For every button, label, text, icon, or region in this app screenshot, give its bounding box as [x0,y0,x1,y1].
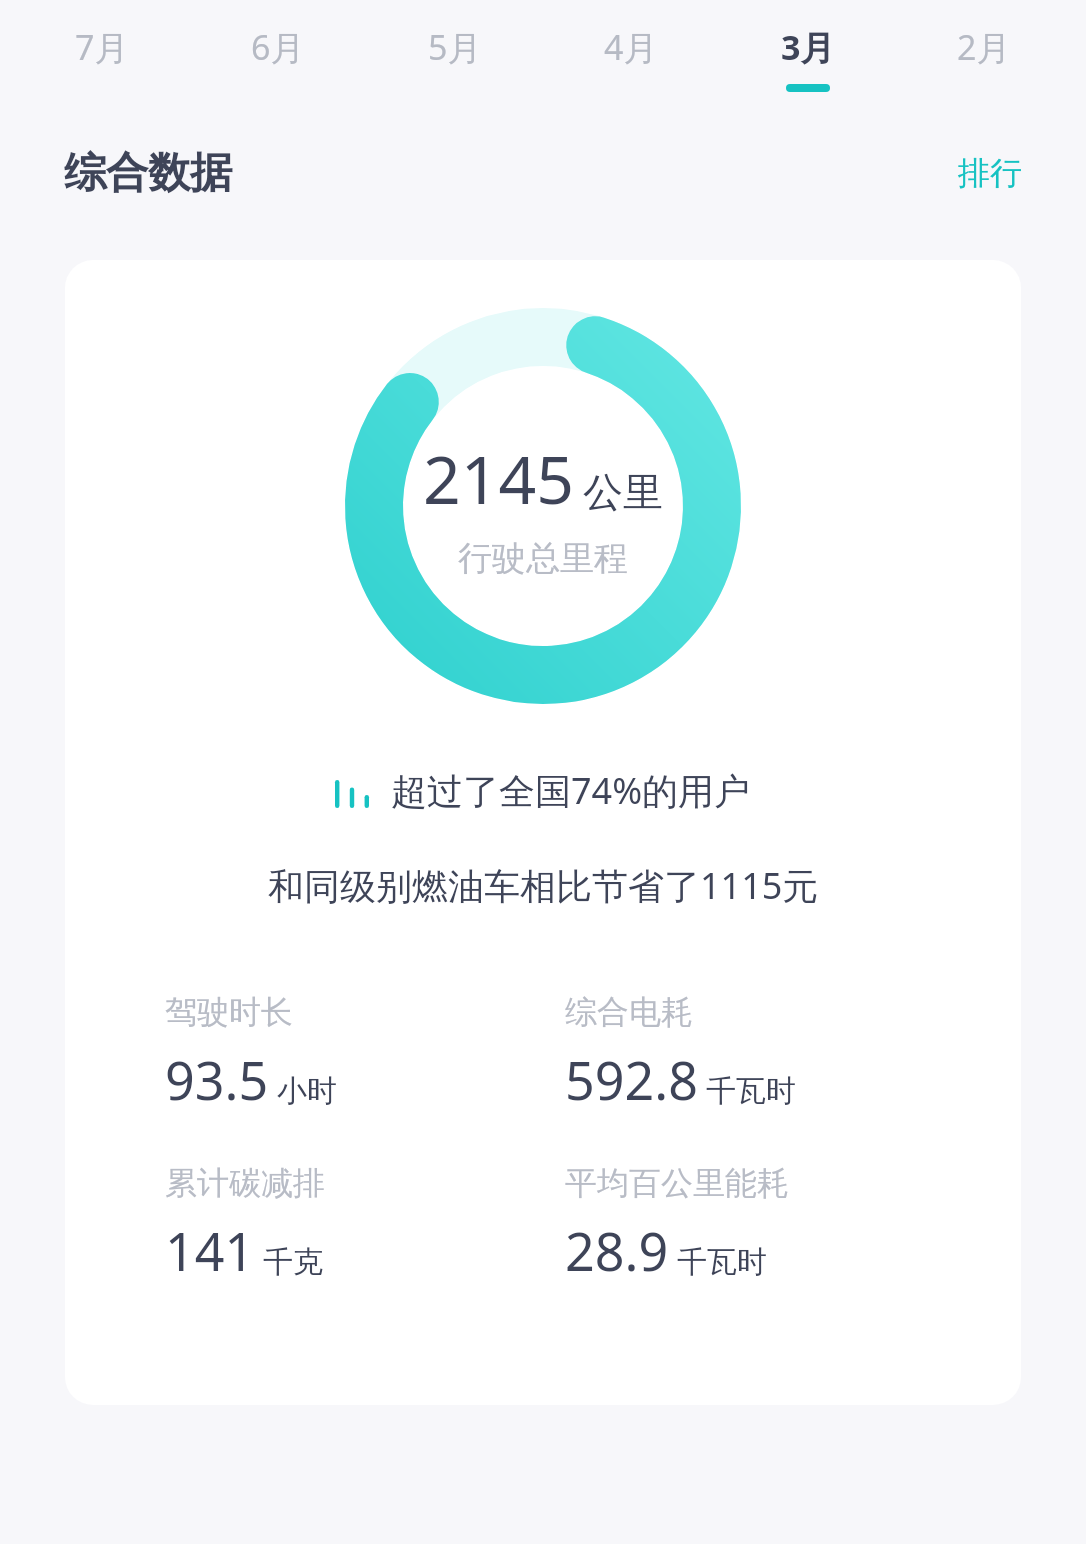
staticText: 93.5 [165,1044,269,1115]
staticText: 千瓦时 [677,1243,767,1281]
staticText: 28.9 [565,1215,669,1286]
button[interactable]: 2145 [65,260,1021,1405]
staticText: 驾驶时长 [165,992,293,1032]
staticText: 7月 [75,24,129,70]
staticText: 行驶总里程 [458,537,628,580]
button[interactable]: 4月 [581,0,681,84]
staticText: 592.8 [565,1044,698,1115]
staticText: 2145 [423,433,575,523]
staticText: 超过了全国74%的用户 [391,766,751,815]
staticText: 小时 [277,1072,337,1110]
button[interactable]: 6月 [228,0,328,84]
staticText: 141 [165,1215,255,1286]
staticText: 公里 [583,467,663,517]
button[interactable]: 5月 [405,0,505,84]
staticText: 综合电耗 [565,992,693,1032]
button[interactable]: 3月 [758,0,858,92]
button[interactable]: 2月 [934,0,1034,84]
staticText: 排行 [958,153,1022,193]
staticText: 累计碳减排 [165,1163,325,1203]
staticText: 平均百公里能耗 [565,1163,789,1203]
button[interactable]: 7月 [52,0,152,84]
staticText: 5月 [428,24,482,70]
staticText: 千克 [263,1243,323,1281]
staticText: 综合数据 [64,147,232,200]
staticText: 4月 [604,24,658,70]
staticText: 2月 [957,24,1011,70]
staticText: 6月 [251,24,305,70]
button[interactable]: 排行 [952,147,1028,199]
staticText: 千瓦时 [706,1072,796,1110]
staticText: 和同级别燃油车相比节省了1115元 [268,861,819,910]
staticText: 3月 [781,24,835,70]
